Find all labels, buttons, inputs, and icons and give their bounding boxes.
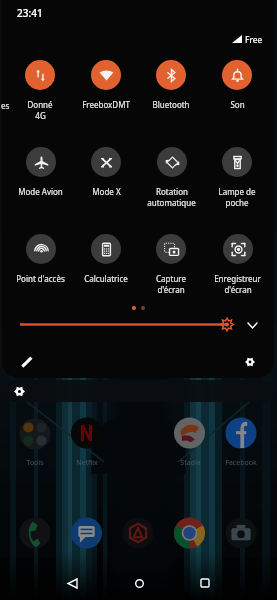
- staticText: Netflix: [76, 458, 98, 468]
- staticText: Lampe de: [218, 186, 256, 197]
- button[interactable]: Point d'accès: [7, 234, 73, 296]
- button[interactable]: Collapse: [244, 317, 261, 334]
- staticText: d'écran: [157, 284, 185, 295]
- button[interactable]: Stadia: [160, 457, 220, 469]
- staticText: Tools: [26, 458, 44, 468]
- button[interactable]: Back: [59, 570, 85, 596]
- button[interactable]: Recents: [192, 570, 218, 596]
- staticText: automatique: [147, 197, 196, 208]
- button[interactable]: FreeboxDMT: [73, 60, 139, 122]
- staticText: Stadia: [180, 458, 201, 468]
- button[interactable]: Mode Avion: [7, 147, 73, 209]
- staticText: Rotation: [156, 186, 188, 197]
- staticText: Son: [230, 99, 245, 110]
- button[interactable]: Calculatrice: [73, 234, 139, 296]
- button[interactable]: Mode X: [73, 147, 139, 209]
- button[interactable]: Enregistreur: [204, 234, 270, 296]
- staticText: d'écran: [224, 284, 252, 295]
- staticText: es: [1, 100, 10, 111]
- button[interactable]: Netflix: [57, 457, 117, 469]
- staticText: Capture: [156, 273, 186, 284]
- button[interactable]: Settings: [238, 350, 262, 374]
- staticText: 23:41: [17, 6, 43, 20]
- staticText: Free: [245, 34, 263, 46]
- button[interactable]: Bluetooth: [138, 60, 204, 122]
- staticText: poche: [225, 197, 249, 208]
- button[interactable]: Facebook: [211, 457, 271, 469]
- staticText: 4G: [35, 110, 46, 121]
- button[interactable]: Settings: [11, 383, 28, 400]
- staticText: Calculatrice: [84, 273, 128, 284]
- button[interactable]: Donné: [7, 60, 73, 122]
- staticText: Donné: [27, 99, 53, 110]
- button[interactable]: Rotation: [138, 147, 204, 209]
- staticText: Bluetooth: [152, 99, 190, 110]
- button[interactable]: Edit tiles: [15, 350, 39, 374]
- button[interactable]: Son: [204, 60, 270, 122]
- button[interactable]: Capture: [138, 234, 204, 296]
- staticText: Mode X: [92, 186, 121, 197]
- staticText: Mode Avion: [18, 186, 63, 197]
- button[interactable]: Home: [126, 570, 152, 596]
- button[interactable]: Tools: [5, 457, 65, 469]
- staticText: Enregistreur: [214, 273, 261, 284]
- staticText: FreeboxDMT: [82, 99, 130, 110]
- button[interactable]: Lampe de: [204, 147, 270, 209]
- staticText: Point d'accès: [16, 273, 65, 284]
- staticText: Facebook: [225, 458, 257, 468]
